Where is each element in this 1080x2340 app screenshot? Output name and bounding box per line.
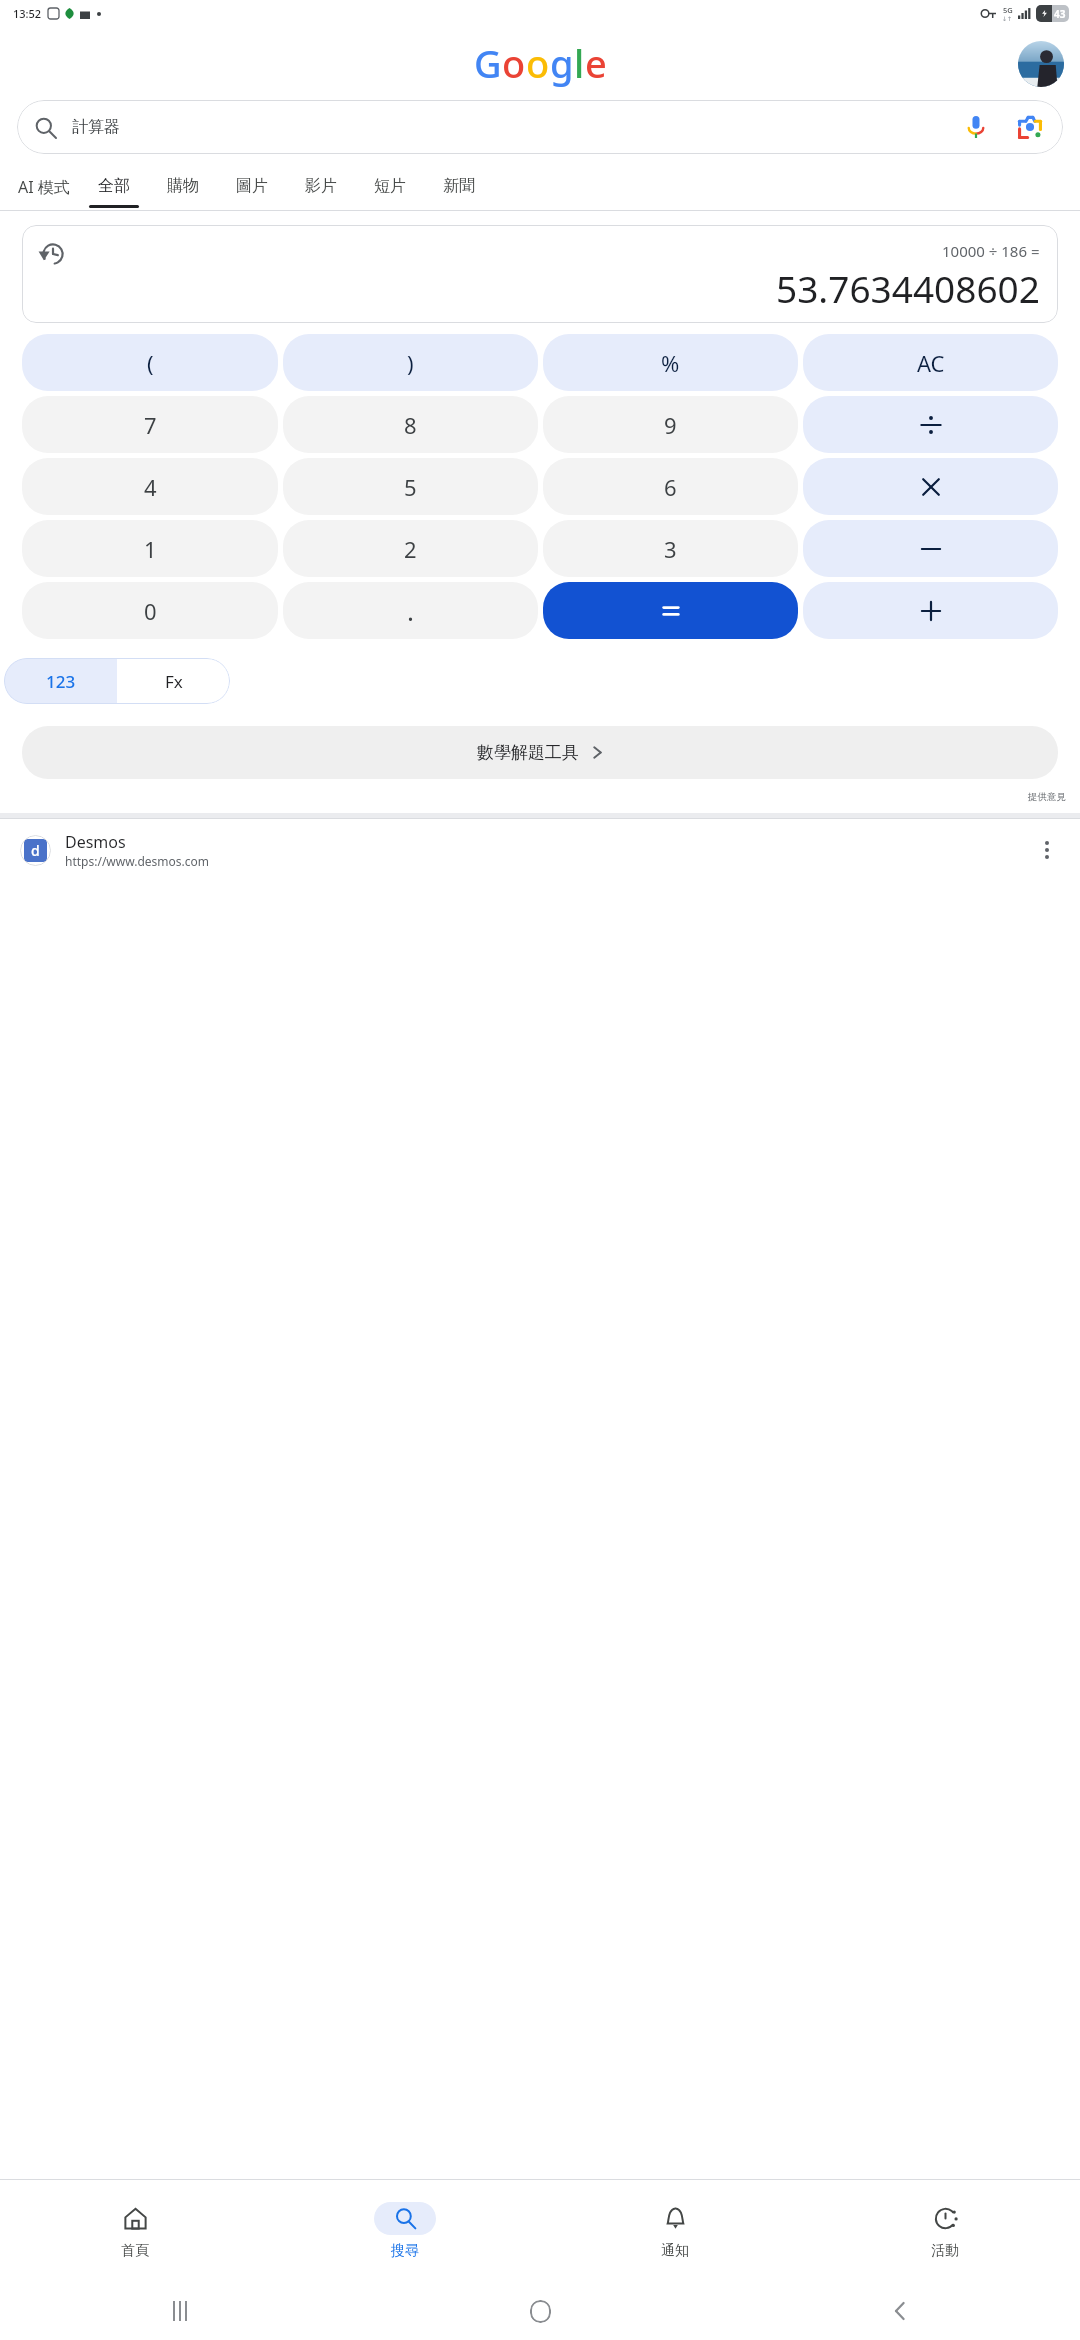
button[interactable]: 8: [283, 396, 538, 453]
staticText: 圖片: [236, 176, 268, 196]
staticText: 搜尋: [391, 2242, 419, 2260]
staticText: g: [550, 37, 574, 89]
button[interactable]: [803, 582, 1058, 639]
staticText: ↓↑: [1002, 15, 1013, 22]
button[interactable]: Google Lens: [1015, 112, 1045, 142]
staticText: AC: [917, 348, 945, 378]
staticText: 6: [664, 472, 677, 502]
staticText: 活動: [931, 2242, 959, 2260]
staticText: (: [147, 348, 154, 378]
button[interactable]: .: [283, 582, 538, 639]
staticText: 提供意見: [0, 791, 1066, 803]
button[interactable]: 全部: [89, 176, 139, 208]
staticText: 新聞: [443, 176, 475, 196]
staticText: 短片: [374, 176, 406, 196]
button[interactable]: d: [20, 819, 1060, 881]
staticText: AI 模式: [18, 176, 70, 198]
button[interactable]: 搜尋: [270, 2180, 540, 2282]
button[interactable]: [803, 396, 1058, 453]
button[interactable]: 首頁: [0, 2180, 270, 2282]
button[interactable]: Recents: [0, 2282, 360, 2340]
staticText: e: [585, 37, 607, 89]
staticText: Fx: [165, 670, 183, 693]
button[interactable]: [803, 520, 1058, 577]
button[interactable]: 2: [283, 520, 538, 577]
staticText: 10000 ÷ 186 =: [942, 241, 1040, 261]
button[interactable]: 圖片: [227, 176, 277, 208]
button[interactable]: More options: [1034, 837, 1060, 863]
button[interactable]: %: [543, 334, 798, 391]
staticText: 8: [404, 410, 417, 440]
button[interactable]: 活動: [810, 2180, 1080, 2282]
button[interactable]: 影片: [296, 176, 346, 208]
staticText: %: [661, 348, 680, 378]
button[interactable]: 0: [22, 582, 278, 639]
button[interactable]: 6: [543, 458, 798, 515]
button[interactable]: 短片: [365, 176, 415, 208]
button[interactable]: [803, 458, 1058, 515]
staticText: https://www.desmos.com: [65, 853, 209, 869]
staticText: 3: [664, 534, 677, 564]
staticText: 5G: [1003, 5, 1013, 15]
button[interactable]: ): [283, 334, 538, 391]
staticText: o: [526, 37, 550, 89]
staticText: 123: [46, 670, 76, 693]
staticText: 13:52: [13, 6, 42, 21]
staticText: l: [574, 37, 585, 89]
staticText: 0: [144, 596, 157, 626]
staticText: 首頁: [121, 2242, 149, 2260]
staticText: 計算器: [72, 117, 120, 137]
button[interactable]: 5: [283, 458, 538, 515]
button[interactable]: Fx: [117, 658, 230, 704]
staticText: 全部: [98, 176, 130, 196]
button[interactable]: 新聞: [434, 176, 484, 208]
staticText: 9: [664, 410, 677, 440]
button[interactable]: Voice search: [961, 112, 991, 142]
button[interactable]: AI 模式: [18, 176, 70, 210]
button[interactable]: 數學解題工具: [22, 726, 1058, 779]
staticText: 53.7634408602: [776, 263, 1040, 313]
staticText: 購物: [167, 176, 199, 196]
staticText: G: [474, 37, 502, 89]
staticText: 影片: [305, 176, 337, 196]
staticText: 2: [404, 534, 417, 564]
staticText: 5: [404, 472, 417, 502]
button[interactable]: Back: [720, 2282, 1080, 2340]
staticText: 7: [144, 410, 157, 440]
staticText: 4: [144, 472, 157, 502]
button[interactable]: 123: [4, 658, 117, 704]
staticText: 通知: [661, 2242, 689, 2260]
staticText: Desmos: [65, 831, 126, 853]
staticText: o: [502, 37, 526, 89]
staticText: 1: [144, 534, 157, 564]
button[interactable]: 7: [22, 396, 278, 453]
button[interactable]: 1: [22, 520, 278, 577]
button[interactable]: 3: [543, 520, 798, 577]
button[interactable]: History: [38, 239, 68, 269]
button[interactable]: AC: [803, 334, 1058, 391]
button[interactable]: 計算器: [17, 100, 1063, 154]
button[interactable]: [543, 582, 798, 639]
staticText: 數學解題工具: [477, 742, 579, 763]
button[interactable]: 4: [22, 458, 278, 515]
button[interactable]: 通知: [540, 2180, 810, 2282]
staticText: d: [31, 841, 40, 860]
button[interactable]: Home: [360, 2282, 720, 2340]
button[interactable]: (: [22, 334, 278, 391]
staticText: .: [407, 593, 414, 628]
button[interactable]: Account: [1018, 41, 1064, 87]
staticText: ): [407, 348, 414, 378]
button[interactable]: 9: [543, 396, 798, 453]
staticText: 43: [1054, 7, 1066, 21]
button[interactable]: 購物: [158, 176, 208, 208]
